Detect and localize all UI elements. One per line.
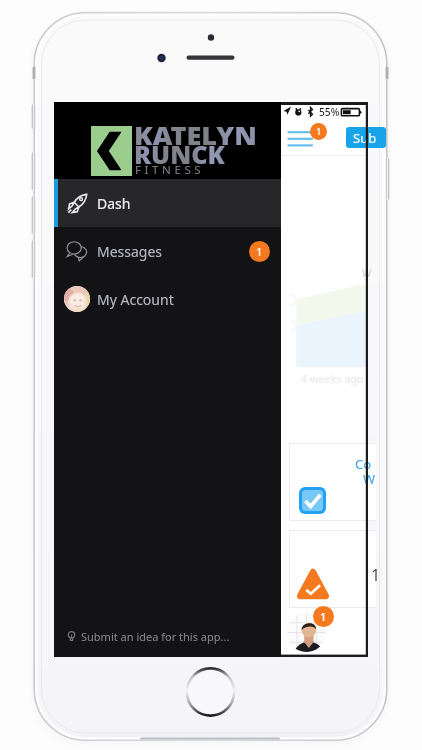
staticText: 1 — [320, 609, 327, 624]
button[interactable]: Submit an idea for this app... — [54, 621, 281, 651]
button[interactable]: 1 — [289, 530, 376, 608]
staticText: 1 — [316, 125, 322, 138]
staticText: 1 — [256, 244, 263, 259]
staticText: Co — [355, 455, 372, 473]
staticText: W — [362, 266, 372, 280]
button[interactable]: My Account — [54, 275, 281, 323]
staticText: 55% — [319, 105, 340, 119]
staticText: RUNCK — [134, 138, 225, 171]
staticText: Sub — [353, 129, 377, 147]
staticText: KATELYN — [134, 119, 257, 152]
staticText: W — [363, 470, 376, 488]
staticText: Submit an idea for this app... — [81, 629, 230, 644]
button[interactable]: Sub — [346, 127, 386, 148]
button[interactable]: Co — [289, 443, 376, 521]
staticText: Dash — [97, 194, 131, 213]
button[interactable]: Open navigation menu — [284, 126, 319, 150]
staticText: My Account — [97, 290, 174, 309]
staticText: FITNESS — [135, 162, 205, 178]
button[interactable]: Messages — [54, 227, 281, 275]
button[interactable]: Dash — [54, 179, 281, 227]
staticText: 4 weeks ago — [301, 371, 364, 386]
staticText: Messages — [97, 242, 163, 261]
staticText: 1 — [371, 564, 381, 586]
